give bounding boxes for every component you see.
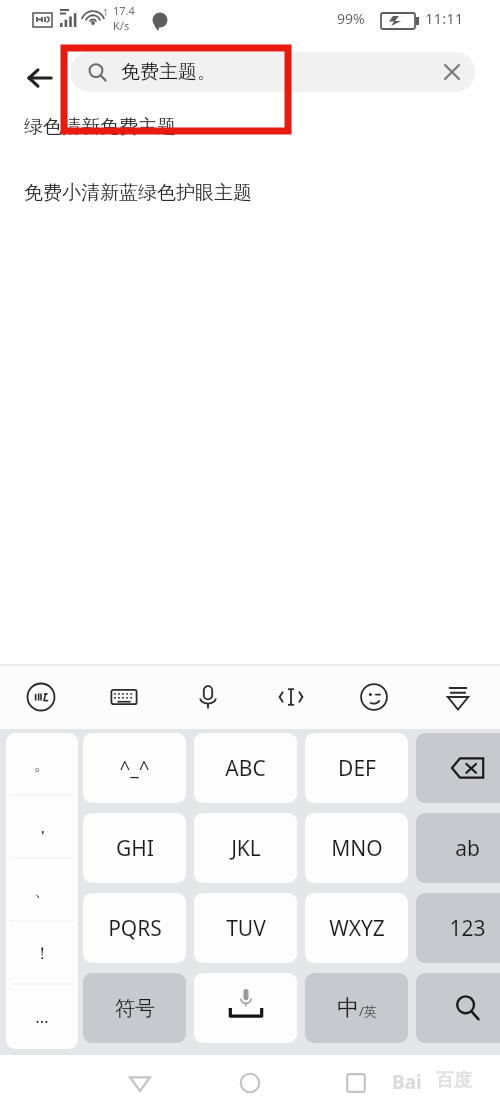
staticText: 17.4	[113, 3, 135, 18]
button[interactable]: GHI	[83, 813, 186, 883]
button[interactable]: …	[6, 985, 78, 1048]
button[interactable]: Search	[416, 973, 500, 1043]
button[interactable]: Home	[230, 1063, 270, 1103]
button[interactable]: 符号	[83, 973, 186, 1043]
button[interactable]: TUV	[194, 893, 297, 963]
staticText: 。	[34, 754, 51, 775]
staticText: 百度	[436, 1069, 472, 1092]
staticText: ABC	[225, 754, 266, 783]
staticText: 符号	[115, 996, 155, 1021]
staticText: /英	[359, 1002, 377, 1020]
staticText: 免费小清新蓝绿色护眼主题	[24, 181, 252, 205]
button[interactable]: Collapse keyboard	[434, 673, 482, 721]
button[interactable]: 、	[6, 859, 78, 922]
button[interactable]: Space, voice input	[194, 973, 297, 1043]
button[interactable]: 绿色清新免费主题	[0, 112, 500, 142]
staticText: 、	[34, 880, 51, 901]
staticText: ！	[34, 943, 51, 964]
button[interactable]: Back	[120, 1063, 160, 1103]
button[interactable]: Move cursor	[267, 673, 315, 721]
button[interactable]: Keyboard layout	[100, 673, 148, 721]
button[interactable]: ABC	[194, 733, 297, 803]
staticText: ，	[34, 817, 51, 838]
button[interactable]: ！	[6, 922, 78, 985]
button[interactable]: DEF	[305, 733, 408, 803]
staticText: K/s	[113, 18, 130, 33]
button[interactable]: MNO	[305, 813, 408, 883]
button[interactable]: 免费小清新蓝绿色护眼主题	[0, 178, 500, 208]
staticText: PQRS	[108, 914, 162, 943]
staticText: ^_^	[119, 755, 150, 781]
button[interactable]: Emoji	[350, 673, 398, 721]
staticText: 99%	[337, 9, 365, 28]
staticText: JKL	[231, 834, 261, 863]
staticText: 1	[103, 6, 109, 18]
staticText: 11:11	[425, 8, 464, 28]
button[interactable]: Recent apps	[336, 1063, 376, 1103]
button[interactable]: 。	[6, 733, 78, 796]
button[interactable]: Back	[18, 56, 62, 100]
button[interactable]: ab	[416, 813, 500, 883]
staticText: WXYZ	[329, 914, 385, 943]
button[interactable]: Input method	[17, 673, 65, 721]
button[interactable]: Voice input	[184, 673, 232, 721]
button[interactable]: WXYZ	[305, 893, 408, 963]
button[interactable]: ^_^	[83, 733, 186, 803]
staticText: 绿色清新免费主题	[24, 115, 176, 139]
button[interactable]: 中	[305, 973, 408, 1043]
button[interactable]: 123	[416, 893, 500, 963]
staticText: 免费主题。	[121, 60, 216, 84]
button[interactable]: JKL	[194, 813, 297, 883]
staticText: 中	[337, 994, 359, 1022]
button[interactable]: Clear	[433, 53, 471, 91]
button[interactable]: PQRS	[83, 893, 186, 963]
staticText: 123	[449, 914, 486, 943]
staticText: DEF	[338, 754, 376, 783]
button[interactable]: ，	[6, 796, 78, 859]
button[interactable]: Backspace	[416, 733, 500, 803]
staticText: MNO	[331, 834, 383, 863]
staticText: TUV	[226, 914, 266, 943]
button[interactable]: 免费主题。	[70, 52, 475, 92]
staticText: ab	[455, 834, 480, 863]
staticText: Bai	[392, 1069, 422, 1095]
staticText: …	[35, 1005, 49, 1028]
staticText: GHI	[116, 834, 154, 863]
